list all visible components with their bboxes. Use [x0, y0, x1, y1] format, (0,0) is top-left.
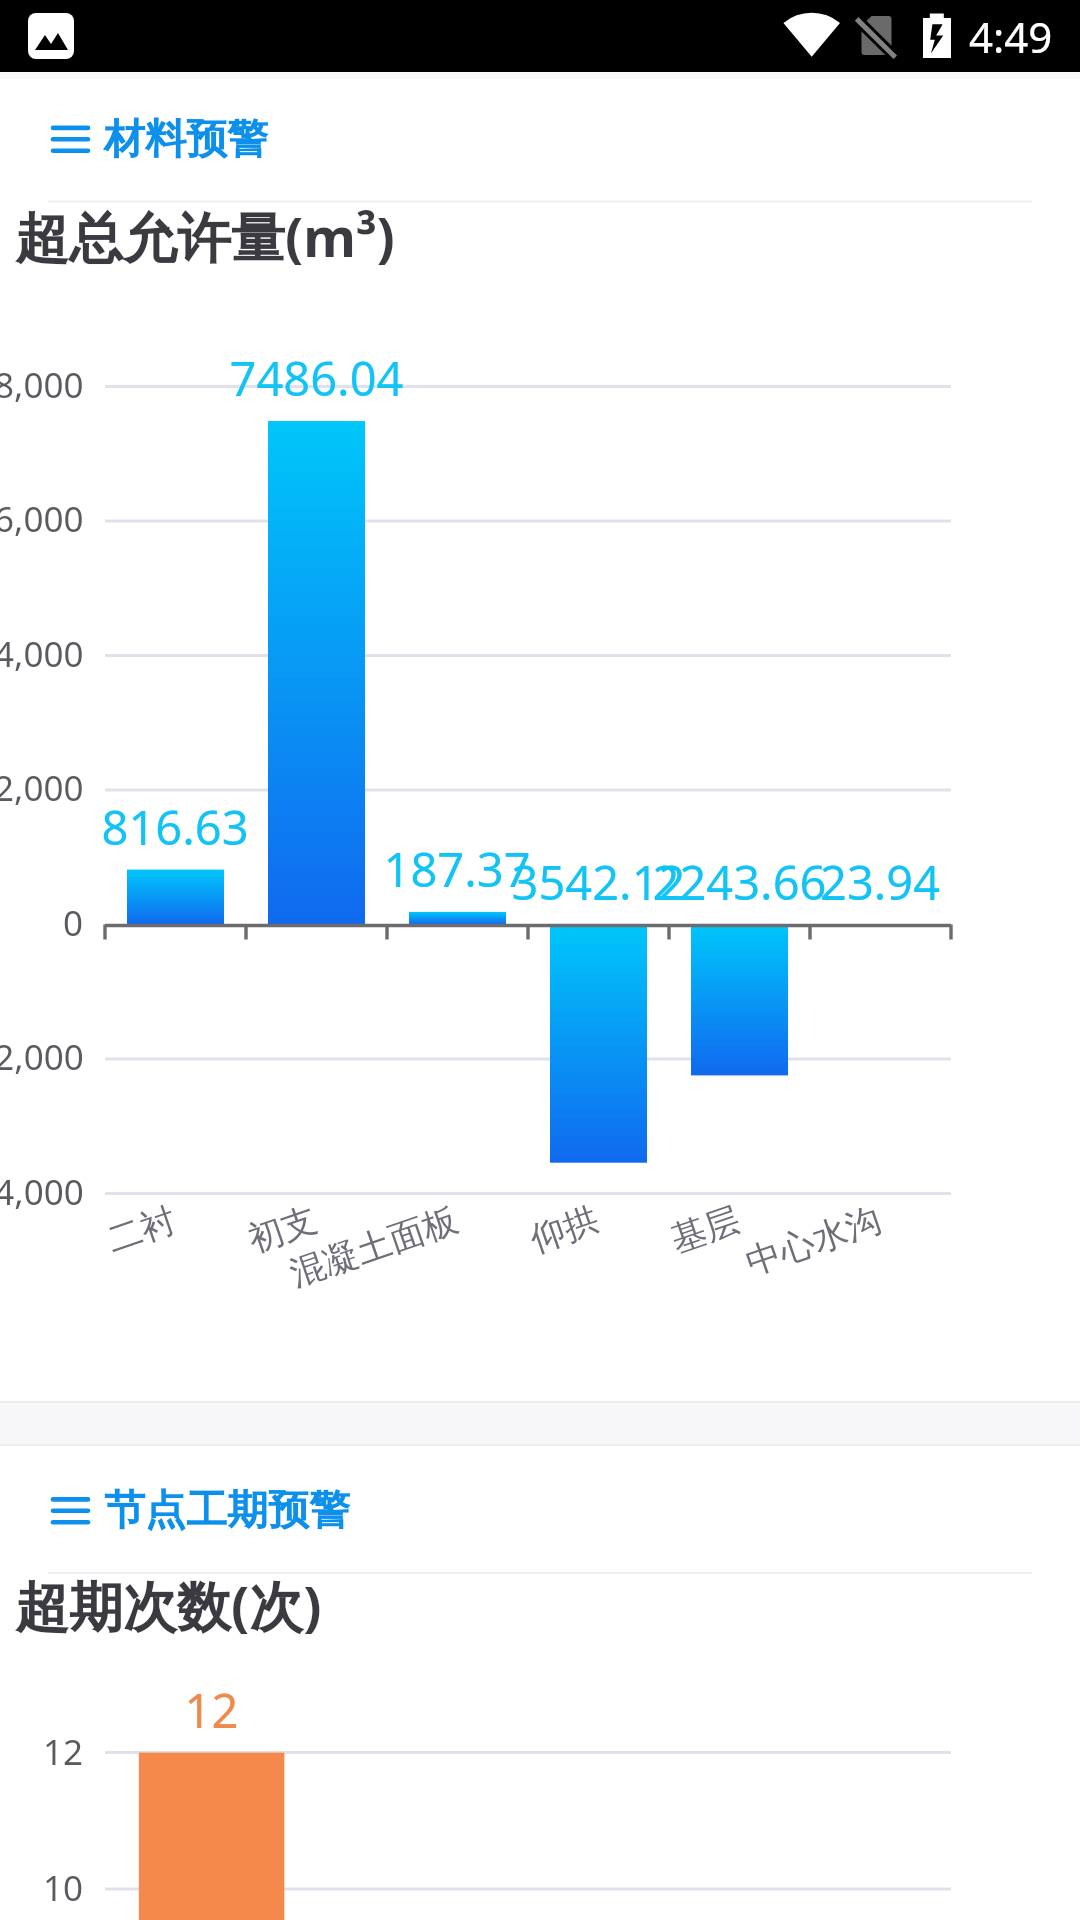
button[interactable]: 超总允许量(m³) 图表 — [0, 205, 1080, 1395]
button[interactable]: 超期次数(次) 图表 — [0, 1575, 1080, 1920]
button[interactable]: 节点工期预警 菜单 — [40, 1474, 370, 1542]
button[interactable]: 材料预警 菜单 — [40, 103, 290, 171]
